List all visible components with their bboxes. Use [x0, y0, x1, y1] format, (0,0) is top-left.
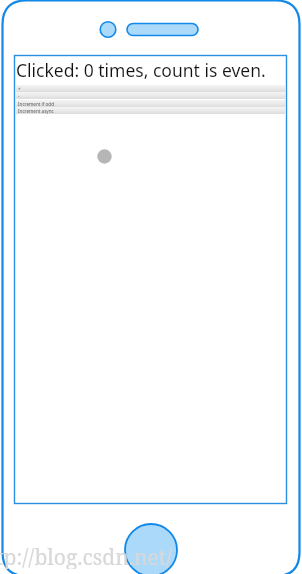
button[interactable]: Decrement: [16, 92, 285, 99]
staticText: +: [18, 86, 21, 92]
staticText: Clicked: 0 times, count is even.: [16, 58, 266, 82]
staticText: tp://blog.csdn.net/oqqMiHu123: [0, 543, 298, 569]
button[interactable]: Increment: [16, 85, 285, 92]
staticText: -: [18, 93, 20, 99]
button[interactable]: Increment if odd: [16, 100, 285, 107]
button[interactable]: Increment async: [16, 107, 285, 114]
staticText: Increment async: [18, 108, 54, 114]
staticText: Increment if odd: [18, 101, 54, 107]
